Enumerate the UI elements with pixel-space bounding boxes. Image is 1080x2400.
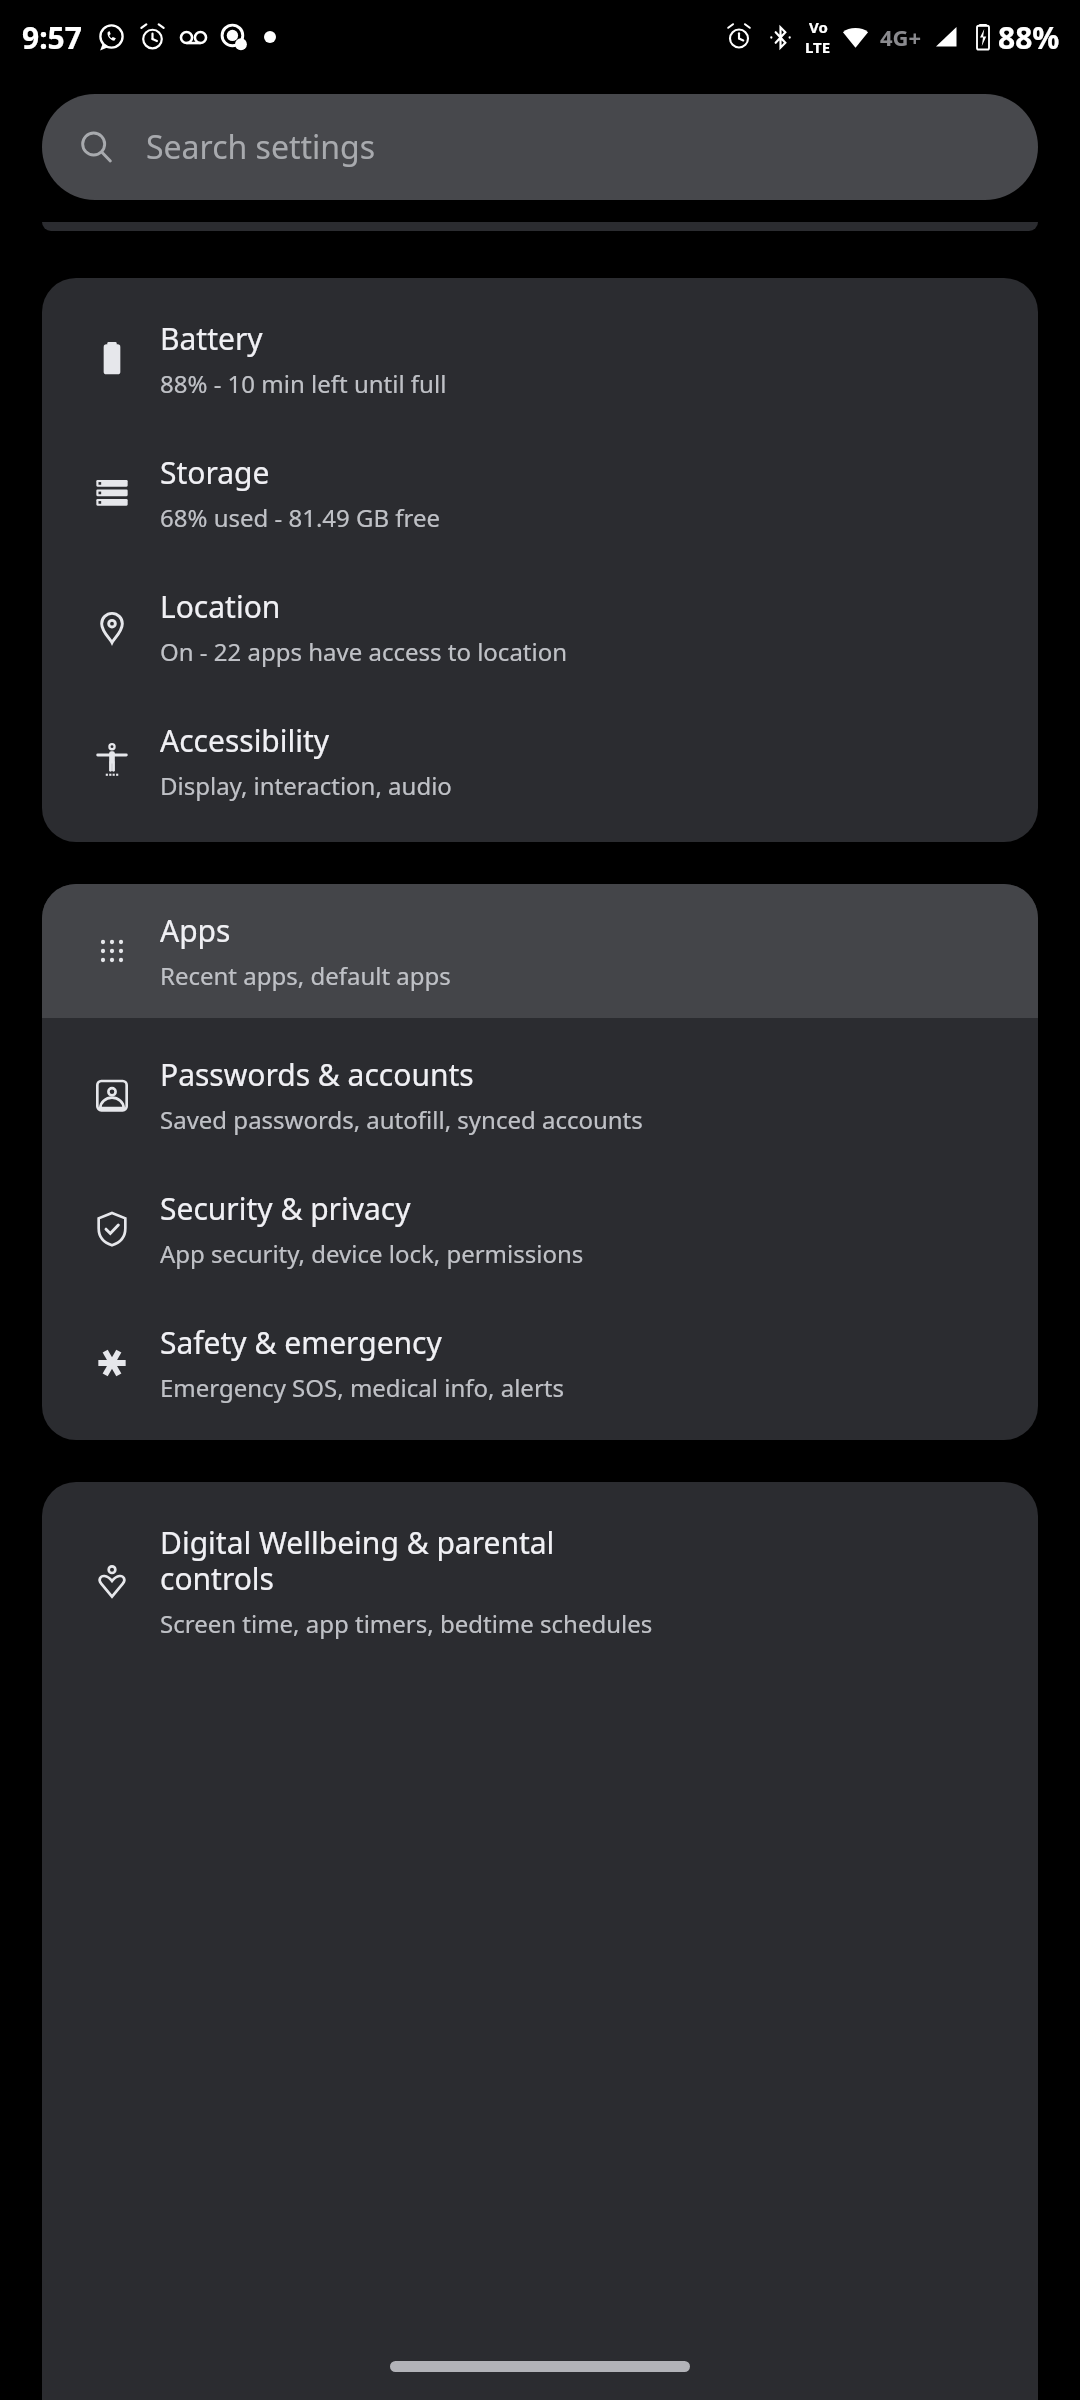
button[interactable]: Digital Wellbeing & parental controls (42, 1496, 1038, 1666)
staticText: 88% (998, 17, 1060, 58)
button[interactable]: Passwords & accounts (42, 1028, 1038, 1162)
staticText: Digital Wellbeing & parental controls (160, 1522, 555, 1599)
staticText: Storage (160, 452, 270, 493)
staticText: App security, device lock, permissions (160, 1237, 584, 1270)
staticText: Safety & emergency (160, 1322, 442, 1363)
staticText: Accessibility (160, 720, 330, 761)
button[interactable]: Location (42, 560, 1038, 694)
staticText: 9:57 (22, 17, 82, 58)
button[interactable]: Search settings (42, 94, 1038, 200)
button[interactable]: Storage (42, 426, 1038, 560)
staticText: Search settings (146, 125, 376, 169)
staticText: Location (160, 586, 281, 627)
staticText: 68% used - 81.49 GB free (160, 501, 441, 534)
button[interactable]: Safety & emergency (42, 1296, 1038, 1430)
staticText: Battery (160, 318, 263, 359)
button[interactable]: Apps (42, 884, 1038, 1018)
staticText: Saved passwords, autofill, synced accoun… (160, 1103, 643, 1136)
staticText: LTE (805, 37, 831, 57)
staticText: Display, interaction, audio (160, 769, 452, 802)
staticText: On - 22 apps have access to location (160, 635, 568, 668)
staticText: 88% - 10 min left until full (160, 367, 447, 400)
button[interactable]: Security & privacy (42, 1162, 1038, 1296)
staticText: Screen time, app timers, bedtime schedul… (160, 1607, 653, 1640)
staticText: Recent apps, default apps (160, 959, 451, 992)
staticText: Security & privacy (160, 1188, 411, 1229)
button[interactable]: Accessibility (42, 694, 1038, 828)
button[interactable]: Battery (42, 292, 1038, 426)
staticText: Passwords & accounts (160, 1054, 474, 1095)
staticText: Emergency SOS, medical info, alerts (160, 1371, 564, 1404)
staticText: Apps (160, 910, 231, 951)
staticText: 4G+ (880, 22, 922, 52)
staticText: Vo (809, 17, 828, 37)
